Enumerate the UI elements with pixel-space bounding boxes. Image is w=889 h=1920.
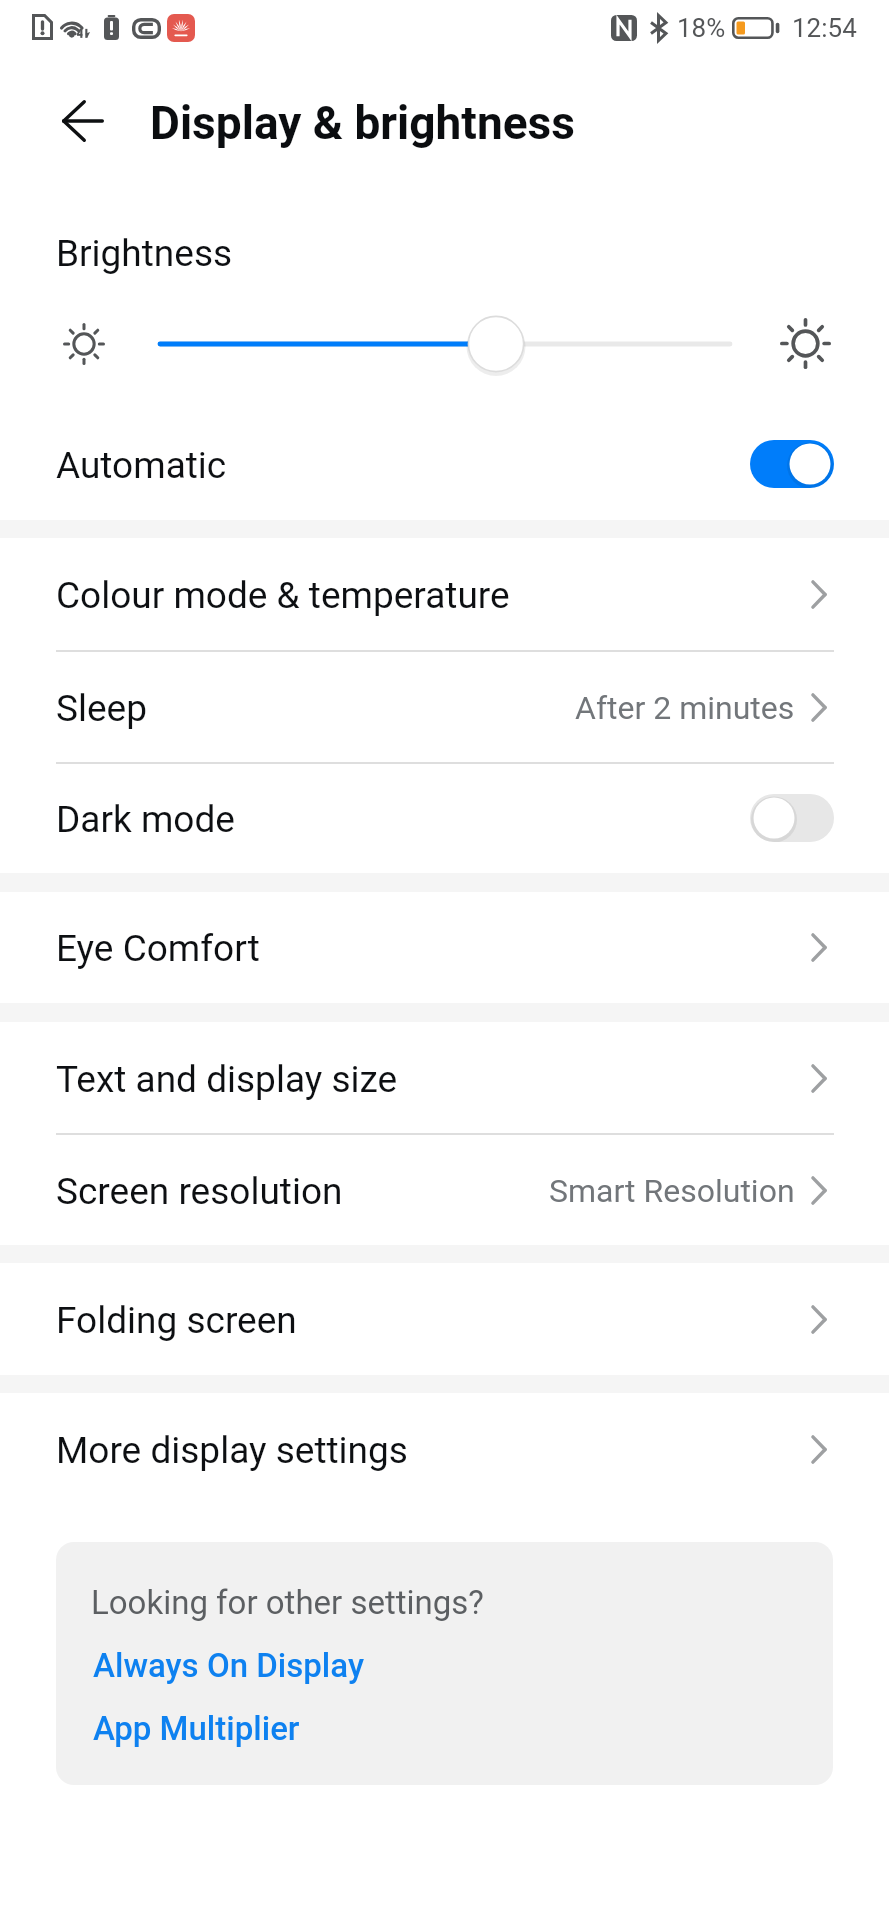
staticText: Display & brightness [150,96,575,150]
button[interactable]: Brightness [150,308,738,380]
button[interactable]: Always On Display [93,1646,365,1685]
staticText: Screen resolution [56,1170,343,1213]
button[interactable]: Eye Comfort [0,891,889,1003]
button[interactable]: Text and display size [0,1022,889,1134]
button[interactable]: Screen resolution [0,1134,889,1246]
staticText: Colour mode & temperature [56,574,510,617]
button[interactable]: Back [40,78,126,164]
staticText: Automatic [56,444,227,487]
staticText: Text and display size [56,1058,398,1101]
button[interactable]: Sleep [0,651,889,763]
button[interactable]: Folding screen [0,1263,889,1375]
button[interactable]: App Multiplier [93,1709,300,1748]
staticText: Eye Comfort [56,927,260,970]
staticText: Smart Resolution [549,1172,795,1210]
button[interactable]: More display settings [0,1393,889,1505]
staticText: 12:54 [792,13,857,43]
staticText: Dark mode [56,798,235,841]
button[interactable]: Dark mode [0,762,889,874]
staticText: Folding screen [56,1299,297,1342]
staticText: 18% [677,13,726,43]
staticText: Looking for other settings? [91,1583,484,1622]
staticText: More display settings [56,1429,408,1472]
button[interactable]: On [750,440,834,488]
button[interactable]: Colour mode & temperature [0,538,889,650]
button[interactable]: Automatic [0,408,889,520]
staticText: After 2 minutes [575,689,795,727]
staticText: App Multiplier [93,1709,300,1748]
staticText: Sleep [56,687,147,730]
staticText: Always On Display [93,1646,365,1685]
button[interactable]: Off [750,794,834,842]
staticText: Brightness [56,232,233,275]
